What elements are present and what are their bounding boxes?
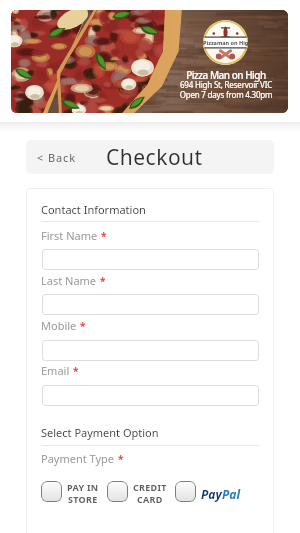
staticText: Checkout <box>106 143 203 172</box>
staticText: Select Payment Option <box>41 425 159 440</box>
staticText: CREDIT <box>133 481 167 493</box>
staticText: Email <box>41 363 70 378</box>
button[interactable] <box>42 340 259 361</box>
button[interactable]: PAY IN <box>41 481 99 505</box>
staticText: * <box>118 452 124 466</box>
staticText: Pizza Man on High <box>146 68 288 82</box>
button[interactable] <box>42 294 259 315</box>
staticText: Mobile <box>41 318 77 333</box>
staticText: STORE <box>68 493 98 505</box>
staticText: Open 7 days from 4.30pm <box>146 89 288 100</box>
staticText: * <box>73 364 79 378</box>
button[interactable] <box>42 249 259 270</box>
staticText: CARD <box>137 493 163 505</box>
button[interactable]: < Back <box>33 144 81 171</box>
staticText: < Back <box>37 150 77 165</box>
staticText: Last Name <box>41 273 97 288</box>
staticText: Contact Information <box>41 202 146 217</box>
staticText: Pay <box>201 486 222 502</box>
staticText: * <box>80 319 86 333</box>
button[interactable] <box>42 385 259 406</box>
button[interactable]: CREDIT <box>107 481 167 505</box>
staticText: First Name <box>41 228 98 243</box>
staticText: 694 High St, Reservoir VIC <box>146 79 288 90</box>
staticText: PAY IN <box>67 481 99 493</box>
button[interactable]: Pay <box>175 481 241 502</box>
staticText: Pizzaman on High <box>203 39 248 46</box>
staticText: * <box>101 229 107 243</box>
staticText: Payment Type <box>41 451 115 466</box>
staticText: Pal <box>222 486 241 502</box>
staticText: * <box>100 274 106 288</box>
